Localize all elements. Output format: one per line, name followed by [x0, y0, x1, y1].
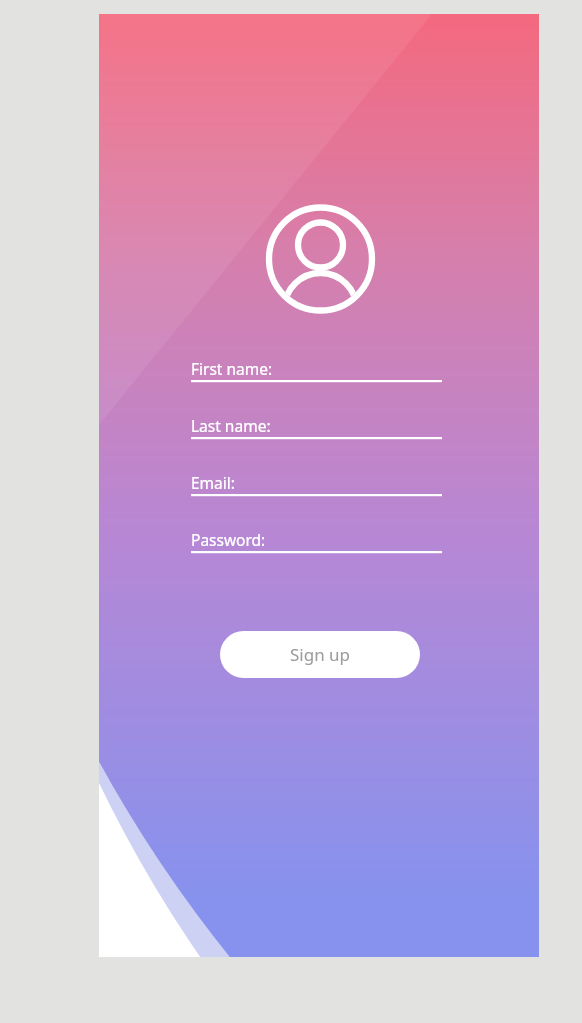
button[interactable]: Sign up [220, 631, 420, 678]
staticText: Password: [191, 529, 266, 550]
button[interactable]: Last name: [191, 415, 442, 439]
staticText: First name: [191, 358, 273, 379]
button[interactable]: First name: [191, 358, 442, 382]
staticText: Last name: [191, 415, 271, 436]
button[interactable]: Email: [191, 472, 442, 496]
staticText: Sign up [290, 643, 351, 666]
staticText: Email: [191, 472, 235, 493]
button[interactable]: Password: [191, 529, 442, 553]
